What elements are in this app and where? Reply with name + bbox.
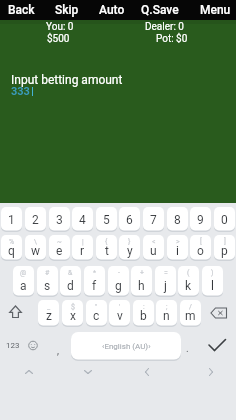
staticText: [	[200, 238, 202, 246]
button[interactable]: 6	[119, 207, 140, 231]
staticText: 4	[79, 213, 86, 227]
button[interactable]: Auto	[96, 0, 128, 20]
staticText: n	[163, 309, 170, 323]
staticText: Auto	[99, 3, 125, 17]
staticText: =	[164, 269, 168, 277]
button[interactable]: 2	[25, 207, 46, 231]
button[interactable]: q	[1, 235, 22, 260]
staticText: d	[67, 279, 74, 293]
staticText: f	[92, 279, 97, 293]
button[interactable]: h	[131, 266, 152, 296]
staticText: Skip	[55, 3, 79, 17]
button[interactable]: 0	[214, 207, 235, 231]
staticText: k	[185, 279, 192, 293]
staticText: You: 0	[46, 21, 74, 33]
staticText: v	[117, 309, 123, 323]
button[interactable]: 4	[72, 207, 93, 231]
button[interactable]: d	[60, 266, 81, 296]
button[interactable]: ‹English (AU)›	[71, 332, 181, 360]
button[interactable]: s	[37, 266, 58, 296]
staticText: 7	[150, 213, 157, 227]
staticText: 6	[126, 213, 133, 227]
button[interactable]: Menu	[199, 0, 231, 20]
staticText: |	[82, 238, 84, 246]
button[interactable]: f	[84, 266, 105, 296]
staticText: b	[140, 309, 147, 323]
button[interactable]: u	[143, 235, 164, 260]
staticText: 5	[103, 213, 110, 227]
button[interactable]	[2, 300, 34, 326]
button[interactable]: x	[62, 300, 83, 326]
staticText: .	[186, 343, 189, 355]
button[interactable]: i	[167, 235, 188, 260]
staticText: Q.Save	[141, 3, 179, 17]
staticText: "	[95, 303, 98, 311]
staticText: 9	[197, 213, 204, 227]
button[interactable]: 1	[1, 207, 22, 231]
staticText: Input betting amount	[11, 73, 123, 87]
button[interactable]: Back	[5, 0, 37, 20]
staticText: $	[71, 303, 75, 311]
staticText: e	[56, 244, 63, 258]
button[interactable]: r	[72, 235, 93, 260]
staticText: 1	[8, 213, 15, 227]
button[interactable]: c	[86, 300, 107, 326]
staticText: \	[34, 238, 37, 246]
staticText: '	[119, 303, 121, 311]
button[interactable]	[205, 300, 234, 326]
staticText: a	[20, 279, 27, 293]
staticText: <	[152, 238, 156, 246]
staticText: Back	[8, 3, 35, 17]
staticText: _	[47, 303, 51, 311]
button[interactable]	[24, 332, 44, 359]
button[interactable]: m	[180, 300, 201, 326]
button[interactable]: t	[96, 235, 117, 260]
staticText: Dealer: 0	[145, 21, 184, 33]
button[interactable]: 9	[190, 207, 211, 231]
staticText: /	[189, 303, 192, 311]
button[interactable]	[200, 332, 234, 359]
button[interactable]: a	[13, 266, 34, 296]
staticText: i	[176, 244, 179, 258]
staticText: >	[176, 238, 180, 246]
button[interactable]: l	[202, 266, 223, 296]
button[interactable]: k	[178, 266, 199, 296]
button[interactable]: 123	[2, 332, 24, 359]
staticText: *	[93, 269, 97, 277]
staticText: s	[44, 279, 51, 293]
staticText: %	[9, 238, 15, 246]
staticText: {	[105, 238, 108, 246]
button[interactable]: o	[190, 235, 211, 260]
staticText: :	[143, 303, 145, 311]
button[interactable]: e	[49, 235, 70, 260]
staticText: }	[128, 238, 131, 246]
button[interactable]: g	[108, 266, 129, 296]
staticText: $500	[47, 33, 70, 45]
button[interactable]: Q.Save	[137, 0, 183, 20]
button[interactable]: Skip	[51, 0, 83, 20]
button[interactable]: b	[133, 300, 154, 326]
button[interactable]: 8	[167, 207, 188, 231]
button[interactable]: v	[109, 300, 130, 326]
staticText: @	[20, 269, 27, 277]
button[interactable]: j	[155, 266, 176, 296]
staticText: h	[138, 279, 145, 293]
button[interactable]: p	[214, 235, 235, 260]
button[interactable]: 5	[96, 207, 117, 231]
button[interactable]: w	[25, 235, 46, 260]
staticText: 2	[32, 213, 39, 227]
staticText: #	[45, 269, 50, 277]
staticText: Pot: $0	[156, 33, 188, 45]
staticText: ‹English (AU)›	[102, 342, 151, 351]
staticText: Menu	[200, 3, 231, 17]
button[interactable]: 7	[143, 207, 164, 231]
button[interactable]: 3	[49, 207, 70, 231]
staticText: z	[46, 309, 52, 323]
button[interactable]: z	[38, 300, 59, 326]
staticText: &	[68, 269, 73, 277]
button[interactable]: n	[156, 300, 177, 326]
staticText: ]	[224, 238, 226, 246]
staticText: 0	[221, 213, 228, 227]
staticText: q	[8, 244, 15, 258]
button[interactable]: y	[119, 235, 140, 260]
